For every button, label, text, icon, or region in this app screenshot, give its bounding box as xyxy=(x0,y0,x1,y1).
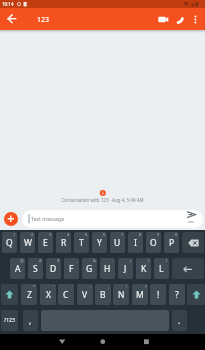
button[interactable]: , xyxy=(23,310,38,331)
staticText: 123 xyxy=(37,15,50,25)
button[interactable]: E xyxy=(38,232,53,253)
button[interactable]: ? xyxy=(169,284,185,305)
button[interactable] xyxy=(189,11,203,25)
button[interactable]: H xyxy=(100,258,115,279)
staticText: 8 xyxy=(139,232,142,237)
button[interactable] xyxy=(182,232,204,253)
staticText: U xyxy=(114,237,121,249)
staticText: 1 xyxy=(13,232,16,237)
staticText: - xyxy=(112,258,114,263)
button[interactable] xyxy=(1,284,18,305)
button[interactable]: C xyxy=(58,284,74,305)
staticText: 7 xyxy=(121,232,124,237)
button[interactable]: Text message xyxy=(22,210,203,228)
button[interactable]: ! xyxy=(150,284,166,305)
staticText: ? xyxy=(175,289,179,301)
button[interactable]: R xyxy=(56,232,71,253)
button[interactable]: A xyxy=(10,258,25,279)
button[interactable]: D xyxy=(46,258,61,279)
button[interactable]: Q xyxy=(2,232,17,253)
staticText: sms xyxy=(188,220,194,224)
button[interactable]: F xyxy=(64,258,79,279)
staticText: B xyxy=(100,289,106,301)
button[interactable]: T xyxy=(74,232,89,253)
button[interactable]: Y xyxy=(92,232,107,253)
staticText: ( xyxy=(148,258,150,263)
button[interactable] xyxy=(173,11,189,27)
button[interactable]: X xyxy=(40,284,56,305)
button[interactable]: J xyxy=(118,258,133,279)
button[interactable]: O xyxy=(146,232,161,253)
staticText: C xyxy=(63,289,69,301)
staticText: ) xyxy=(166,258,168,263)
staticText: ' xyxy=(72,284,73,289)
staticText: N xyxy=(118,289,125,301)
staticText: $ xyxy=(57,258,60,263)
staticText: Q xyxy=(6,237,13,249)
staticText: P xyxy=(169,237,175,249)
staticText: K xyxy=(141,263,147,275)
staticText: 6 xyxy=(103,232,106,237)
staticText: 3 xyxy=(49,232,52,237)
button[interactable] xyxy=(172,258,204,279)
button[interactable] xyxy=(95,335,111,350)
staticText: 10:14 xyxy=(2,1,14,7)
button[interactable]: I xyxy=(128,232,143,253)
button[interactable]: P xyxy=(164,232,179,253)
button[interactable]: V xyxy=(77,284,93,305)
staticText: 9 xyxy=(157,232,160,237)
staticText: ! xyxy=(126,284,128,289)
button[interactable]: W xyxy=(20,232,35,253)
button[interactable]: U xyxy=(110,232,125,253)
staticText: _ xyxy=(76,258,78,263)
staticText: V xyxy=(82,289,88,301)
staticText: ? xyxy=(145,284,147,289)
staticText: A xyxy=(15,263,21,275)
staticText: . xyxy=(178,315,181,326)
staticText: ?123 xyxy=(4,317,15,324)
button[interactable]: Z xyxy=(21,284,37,305)
button[interactable] xyxy=(4,212,18,226)
staticText: R xyxy=(61,237,67,249)
staticText: G xyxy=(86,263,93,275)
staticText: W xyxy=(24,237,32,249)
button[interactable]: B xyxy=(95,284,111,305)
button[interactable]: M xyxy=(132,284,148,305)
button[interactable]: S xyxy=(28,258,43,279)
staticText: E xyxy=(43,237,48,249)
staticText: M xyxy=(136,289,144,301)
staticText: & xyxy=(93,258,96,263)
button[interactable] xyxy=(54,335,70,350)
staticText: I xyxy=(134,237,137,249)
staticText: D xyxy=(50,263,57,275)
button[interactable]: N xyxy=(113,284,129,305)
staticText: F xyxy=(69,263,74,275)
staticText: @ xyxy=(20,258,24,263)
staticText: H xyxy=(104,263,111,275)
button[interactable]: sms xyxy=(182,207,202,227)
staticText: Z xyxy=(27,289,32,301)
button[interactable]: G xyxy=(82,258,97,279)
staticText: Text message xyxy=(31,215,65,222)
staticText: S xyxy=(33,263,38,275)
staticText: : xyxy=(90,284,92,289)
staticText: 4 xyxy=(67,232,70,237)
button[interactable]: . xyxy=(172,310,187,331)
button[interactable] xyxy=(187,284,205,305)
staticText: Conversation with 123 · Aug 4, 5:49 AM xyxy=(0,197,205,203)
button[interactable]: L xyxy=(154,258,169,279)
staticText: + xyxy=(129,258,132,263)
staticText: 5 xyxy=(85,232,88,237)
button[interactable] xyxy=(4,11,20,27)
staticText: # xyxy=(39,258,42,263)
button[interactable] xyxy=(155,11,171,27)
staticText: Y xyxy=(97,237,102,249)
staticText: T xyxy=(79,237,84,249)
button[interactable] xyxy=(138,335,154,350)
button[interactable]: K xyxy=(136,258,151,279)
staticText: 0 xyxy=(175,232,178,237)
staticText: " xyxy=(53,284,55,289)
staticText: , xyxy=(29,315,32,326)
button[interactable]: ?123 xyxy=(1,310,18,331)
